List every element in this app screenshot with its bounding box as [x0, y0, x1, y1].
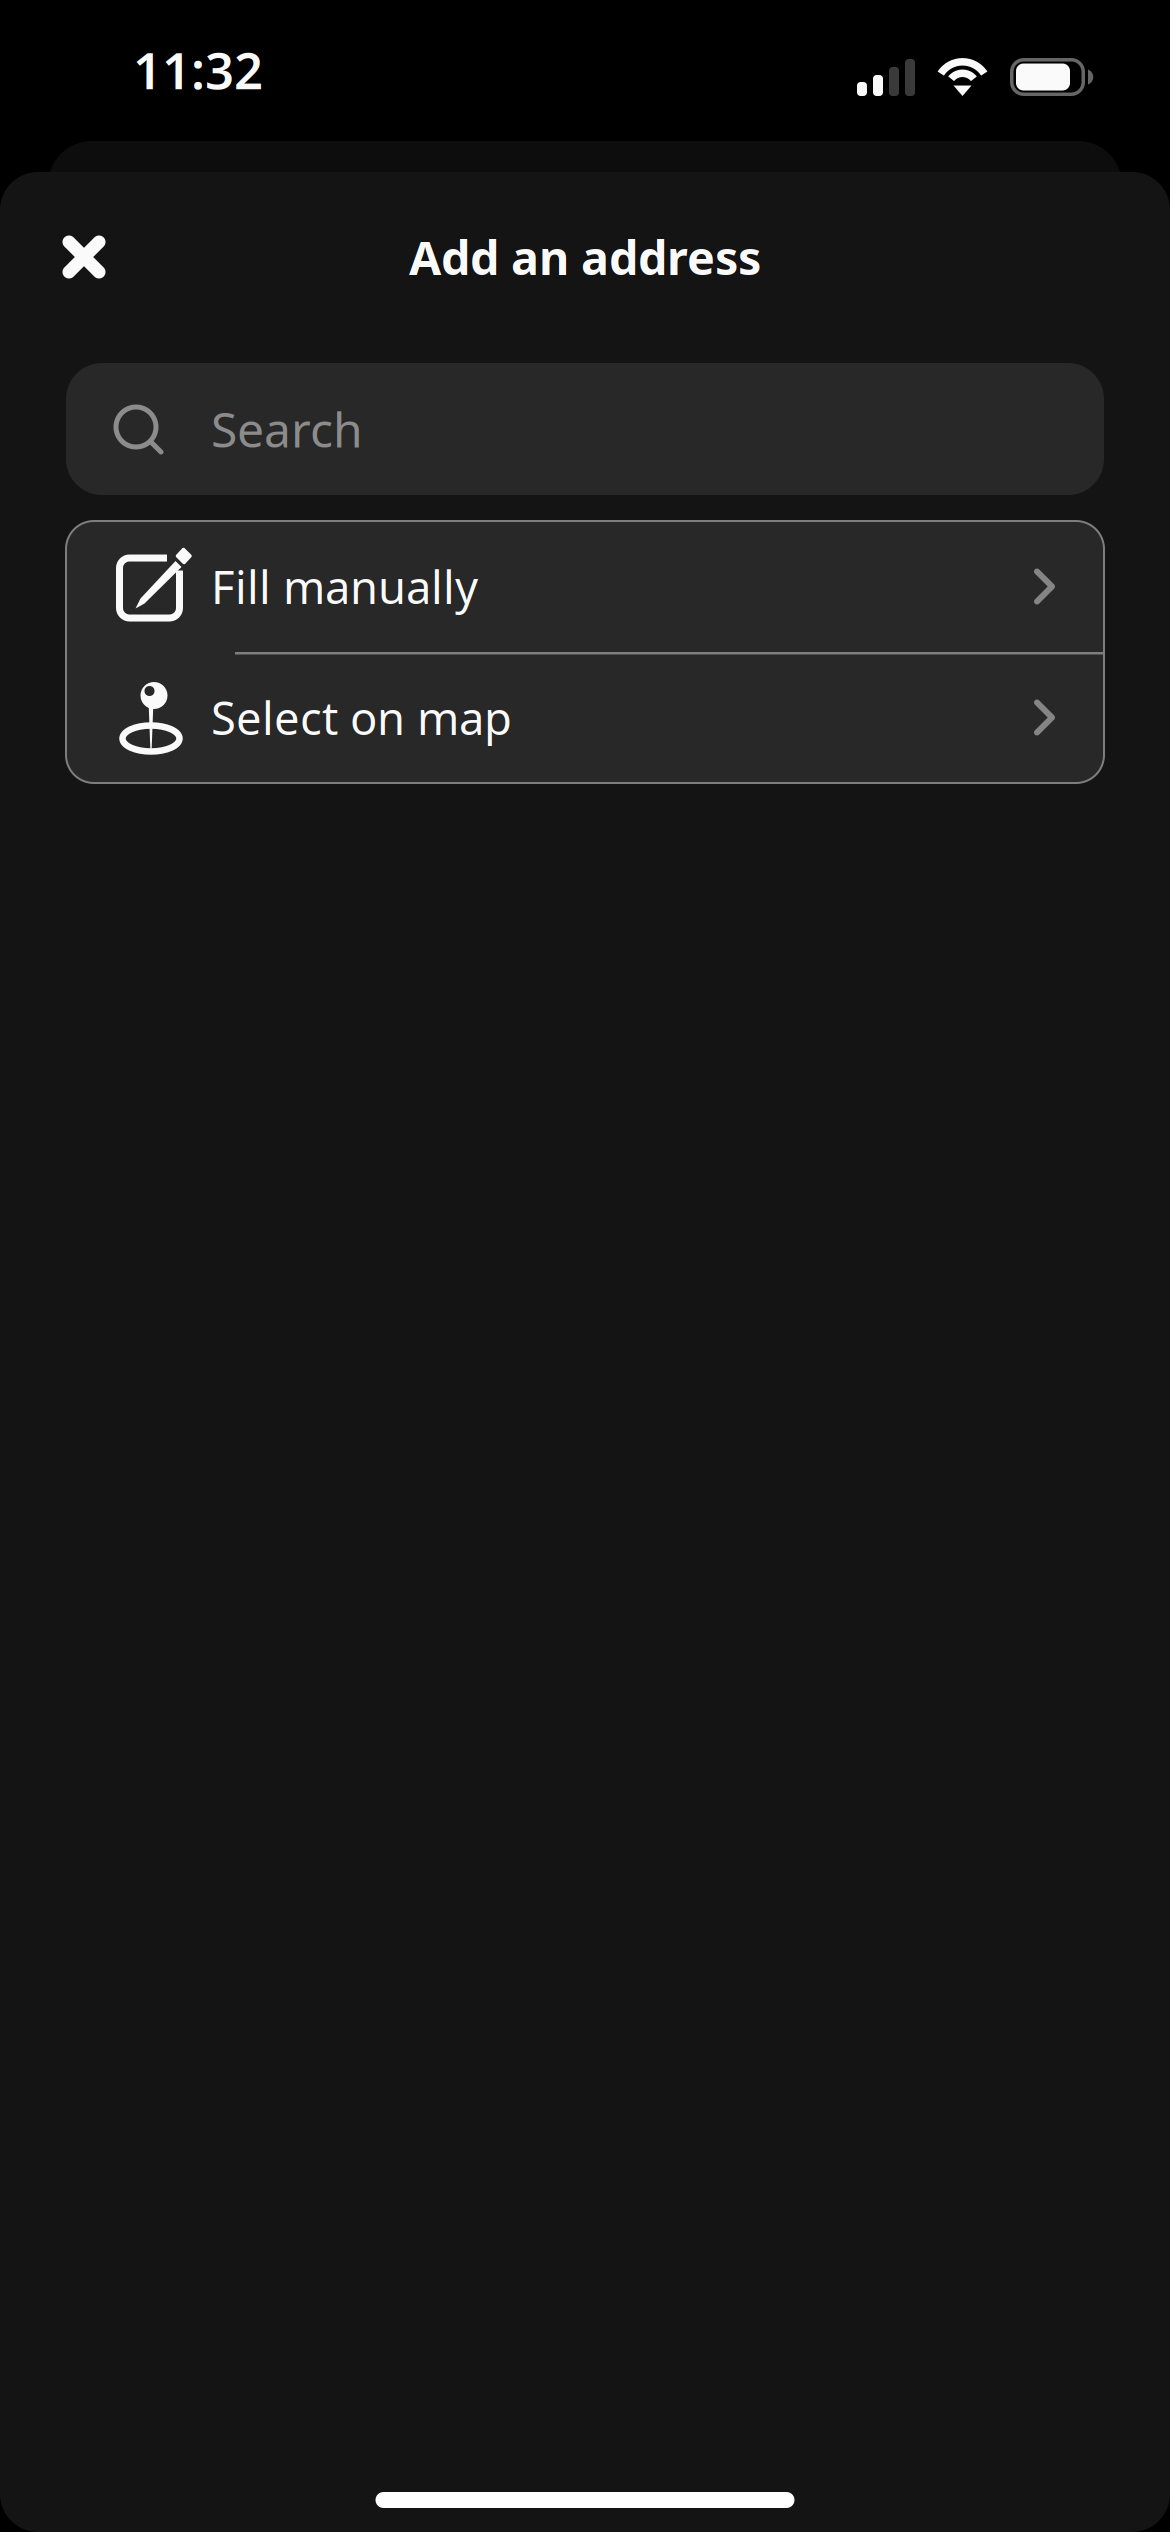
- staticText: Add an address: [409, 226, 761, 288]
- button[interactable]: Search: [66, 363, 1104, 495]
- staticText: Search: [211, 397, 363, 461]
- staticText: Select on map: [211, 687, 512, 748]
- button[interactable]: Close: [36, 209, 132, 305]
- button[interactable]: Select on map: [66, 652, 1104, 783]
- button[interactable]: Fill manually: [66, 521, 1104, 652]
- staticText: 11:32: [133, 36, 263, 103]
- staticText: Fill manually: [211, 556, 478, 617]
